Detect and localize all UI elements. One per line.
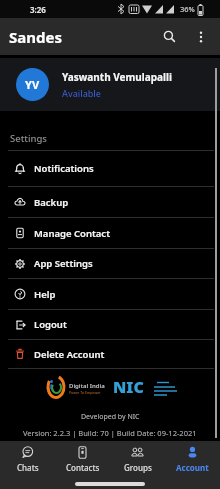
staticText: Digital India [69,382,105,390]
staticText: App Settings [34,257,93,270]
button[interactable]: Delete Account [0,340,220,368]
button[interactable] [159,26,181,48]
button[interactable]: Manage Contact [0,218,220,248]
button[interactable]: Logout [0,310,220,339]
staticText: Contacts [66,462,100,473]
staticText: Developed by NIC [81,412,140,422]
button[interactable]: Backup [0,187,220,217]
button[interactable]: Help [0,279,220,309]
button[interactable]: App Settings [0,249,220,278]
staticText: 36% [180,4,195,14]
staticText: Sandes [9,27,62,47]
staticText: Groups [124,462,152,473]
staticText: 3:26 [30,4,46,15]
staticText: Logout [34,318,67,331]
staticText: YV [25,77,40,92]
staticText: Power To Empower [69,390,101,395]
button[interactable]: Groups [110,446,165,473]
staticText: Manage Contact [34,227,111,240]
button[interactable]: Contacts [55,446,110,473]
staticText: Chats [17,462,39,473]
staticText: Available [62,87,101,99]
staticText: Yaswanth Vemulapalli [62,70,173,84]
staticText: Notifications [34,162,94,175]
staticText: Help [34,288,56,301]
button[interactable]: Chats [0,446,55,473]
staticText: Settings [10,132,47,145]
staticText: NIC [113,376,144,398]
button[interactable]: Account [165,446,220,473]
staticText: Delete Account [34,348,105,361]
staticText: Version: 2.2.3 | Build: 70 | Build Date:… [23,428,197,438]
button[interactable]: YV [16,58,220,111]
staticText: Account [176,462,209,473]
staticText: Backup [34,196,69,209]
button[interactable] [193,29,209,45]
button[interactable]: Notifications [0,151,220,186]
